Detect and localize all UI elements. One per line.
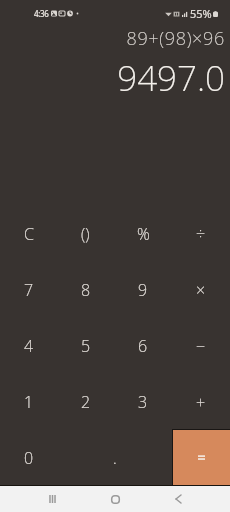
button[interactable]: ()	[57, 204, 114, 261]
button[interactable]: 2	[57, 373, 114, 429]
staticText: 4:36	[34, 8, 49, 19]
button[interactable]: Equals	[173, 430, 230, 485]
staticText: %	[137, 223, 150, 245]
staticText: 0	[24, 447, 34, 469]
button[interactable]: Recents	[20, 486, 84, 512]
staticText: 9497.0	[117, 54, 225, 102]
button[interactable]: ×	[172, 261, 230, 317]
staticText: 2	[81, 391, 91, 413]
staticText: 9	[138, 279, 148, 301]
button[interactable]: Home	[84, 486, 147, 512]
button[interactable]: 9	[114, 261, 172, 317]
button[interactable]: +	[172, 373, 230, 429]
staticText: 55%	[190, 6, 212, 21]
staticText: 8	[81, 279, 91, 301]
staticText: .	[113, 447, 117, 469]
button[interactable]: 5	[57, 317, 114, 373]
button[interactable]: 6	[114, 317, 172, 373]
staticText: 3	[138, 391, 148, 413]
staticText: ()	[81, 223, 90, 245]
staticText: −	[196, 335, 206, 357]
staticText: 89+(98)×96	[126, 26, 225, 51]
button[interactable]: 3	[114, 373, 172, 429]
staticText: C	[24, 223, 34, 245]
staticText: ×	[196, 279, 206, 301]
staticText: 1	[24, 391, 34, 413]
staticText: +	[196, 391, 206, 413]
staticText: 5	[81, 335, 91, 357]
staticText: 7	[24, 279, 34, 301]
button[interactable]: ÷	[172, 204, 230, 261]
button[interactable]: C	[0, 204, 57, 261]
button[interactable]: 7	[0, 261, 57, 317]
button[interactable]: 8	[57, 261, 114, 317]
staticText: 6	[138, 335, 148, 357]
button[interactable]: Back	[147, 486, 210, 512]
button[interactable]: %	[114, 204, 172, 261]
staticText: 4	[24, 335, 34, 357]
button[interactable]: 1	[0, 373, 57, 429]
staticText: ÷	[196, 223, 206, 245]
button[interactable]: −	[172, 317, 230, 373]
button[interactable]: 4	[0, 317, 57, 373]
button[interactable]: 0	[0, 429, 57, 485]
